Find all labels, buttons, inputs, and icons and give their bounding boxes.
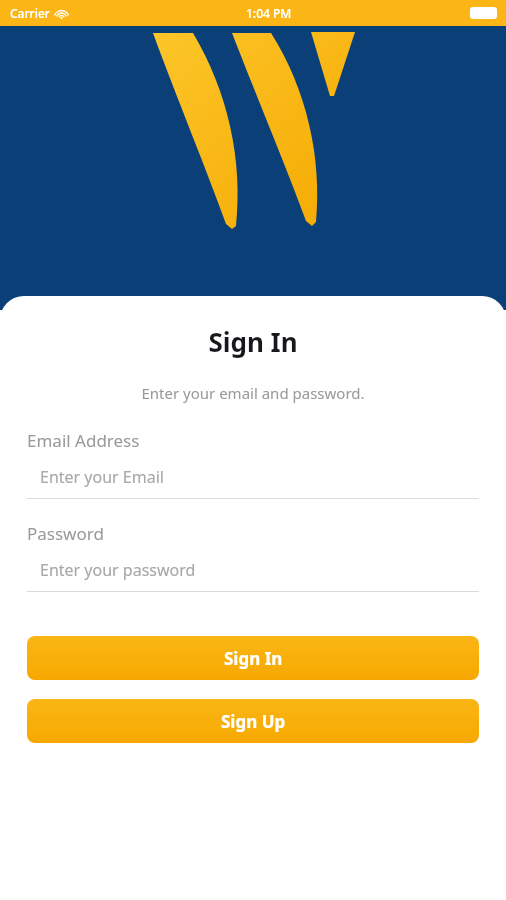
staticText: 1:04 PM	[246, 5, 292, 21]
staticText: Password	[27, 522, 104, 545]
staticText: Email Address	[27, 429, 140, 452]
staticText: Enter your Email	[40, 466, 164, 488]
button[interactable]: Email Address	[27, 429, 479, 499]
button[interactable]: Password	[27, 522, 479, 592]
staticText: Carrier	[10, 5, 50, 21]
button[interactable]: Sign Up	[27, 699, 479, 743]
staticText: Enter your password	[40, 559, 196, 581]
staticText: Sign In	[224, 647, 283, 670]
button[interactable]: Sign In	[27, 636, 479, 680]
staticText: Sign In	[0, 324, 506, 359]
staticText: Enter your email and password.	[0, 383, 506, 403]
staticText: Sign Up	[221, 710, 286, 733]
